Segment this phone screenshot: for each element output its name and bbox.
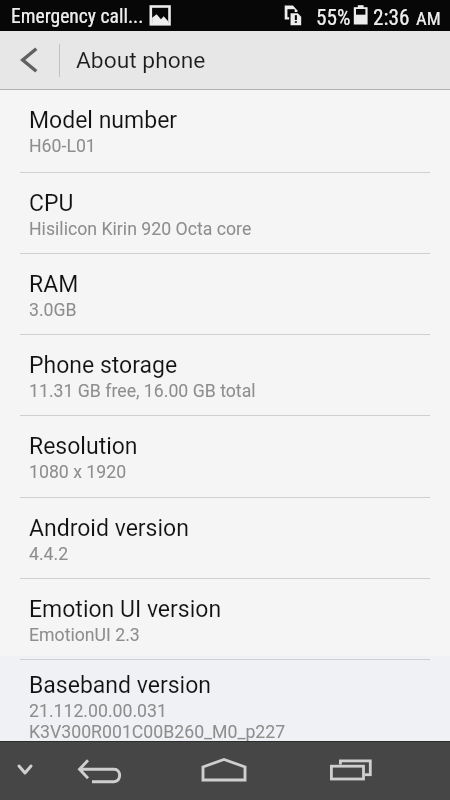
staticText: Hisilicon Kirin 920 Octa core — [29, 219, 252, 240]
staticText: 21.112.00.00.031 — [29, 701, 167, 722]
staticText: RAM — [29, 271, 79, 298]
staticText: Baseband version — [29, 672, 211, 699]
staticText: About phone — [76, 47, 206, 74]
staticText: 55% — [316, 5, 351, 30]
staticText: Emergency call... — [11, 5, 144, 28]
button[interactable]: Back — [0, 31, 59, 89]
button[interactable]: Back — [55, 742, 145, 800]
staticText: Android version — [29, 515, 189, 542]
button[interactable]: Phone storage — [0, 335, 450, 415]
staticText: AM — [416, 8, 441, 30]
staticText: CPU — [29, 190, 74, 217]
staticText: 2:36 — [373, 5, 410, 30]
staticText: 11.31 GB free, 16.00 GB total — [29, 381, 256, 402]
button[interactable]: RAM — [0, 254, 450, 334]
button[interactable]: Hide navigation bar — [0, 742, 50, 800]
button[interactable]: Emotion UI version — [0, 579, 450, 659]
button[interactable]: Baseband version — [0, 660, 450, 741]
staticText: 4.4.2 — [29, 544, 69, 565]
button[interactable]: Android version — [0, 498, 450, 578]
staticText: Emotion UI version — [29, 596, 222, 623]
staticText: 3.0GB — [29, 300, 77, 321]
button[interactable]: CPU — [0, 173, 450, 253]
staticText: Phone storage — [29, 352, 178, 379]
button[interactable]: Model number — [0, 90, 450, 172]
staticText: Model number — [29, 107, 178, 134]
staticText: K3V300R001C00B260_M0_p227 — [29, 722, 286, 741]
staticText: EmotionUI 2.3 — [29, 625, 140, 646]
button[interactable]: Resolution — [0, 416, 450, 497]
staticText: Resolution — [29, 433, 138, 460]
button[interactable]: Home — [179, 742, 269, 800]
button[interactable]: Recent apps — [306, 742, 396, 800]
staticText: H60-L01 — [29, 136, 96, 157]
staticText: 1080 x 1920 — [29, 462, 127, 483]
